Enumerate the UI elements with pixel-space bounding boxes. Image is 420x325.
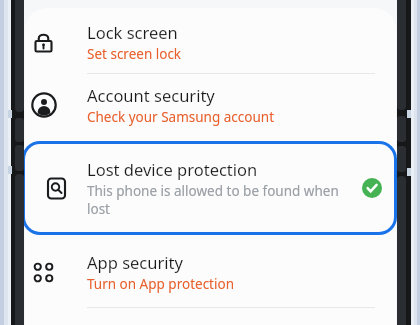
other: App security <box>0 261 87 284</box>
button[interactable]: Lock screen <box>0 11 420 73</box>
button[interactable]: Account security <box>0 74 420 136</box>
staticText: Lost device protection <box>87 158 258 180</box>
other: Lock screen <box>0 30 87 55</box>
button[interactable]: App security <box>0 243 420 301</box>
staticText: Turn on App protection <box>87 275 234 293</box>
other: Account security <box>0 92 87 118</box>
staticText: Account security <box>87 84 215 106</box>
staticText: Lock screen <box>87 21 178 43</box>
staticText: Set screen lock <box>87 45 182 63</box>
staticText: App security <box>87 251 183 273</box>
button[interactable]: Lost device protection <box>25 144 394 232</box>
staticText: This phone is allowed to be found when l… <box>87 182 350 218</box>
staticText: Check your Samsung account <box>87 108 275 126</box>
